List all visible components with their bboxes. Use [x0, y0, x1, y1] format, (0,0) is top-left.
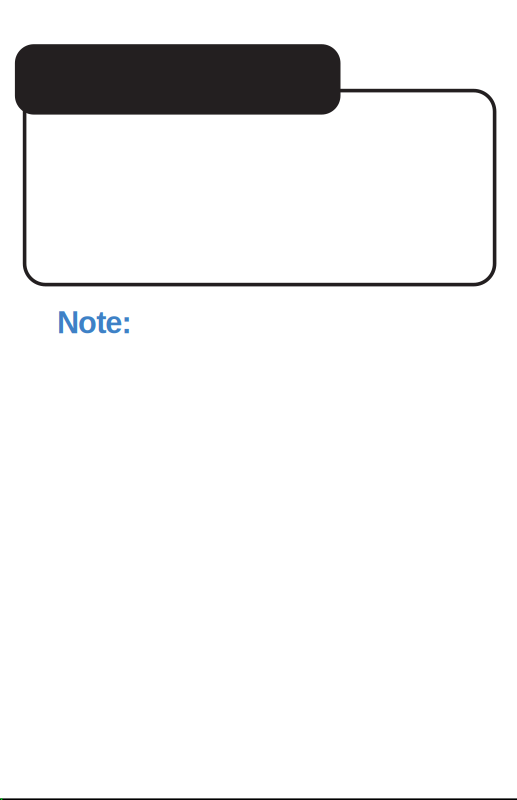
button[interactable]: Panel title	[15, 44, 340, 115]
staticText: Note:	[57, 305, 131, 340]
